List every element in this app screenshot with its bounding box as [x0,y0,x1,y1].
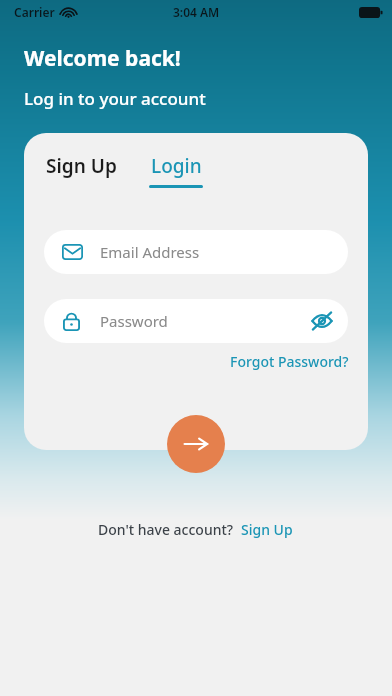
staticText: Log in to your account [24,87,206,110]
staticText: Password [100,311,168,331]
staticText: Login [151,153,202,179]
button[interactable]: Email Address [44,230,348,274]
staticText: Welcome back! [24,44,181,73]
button[interactable]: Sign Up [42,151,121,181]
staticText: Carrier [14,4,55,20]
button[interactable]: Continue [167,415,225,473]
staticText: Sign Up [46,153,117,179]
button[interactable]: Show password [306,305,338,337]
button[interactable]: Login [145,151,207,190]
staticText: Don't have account? [98,520,234,539]
staticText: Sign Up [241,520,293,539]
staticText: Forgot Password? [230,352,349,371]
button[interactable]: Sign Up [239,518,295,541]
staticText: 3:04 AM [173,4,220,20]
staticText: Email Address [100,242,200,262]
button[interactable]: Forgot Password? [227,350,352,373]
button[interactable]: Password [44,299,348,343]
